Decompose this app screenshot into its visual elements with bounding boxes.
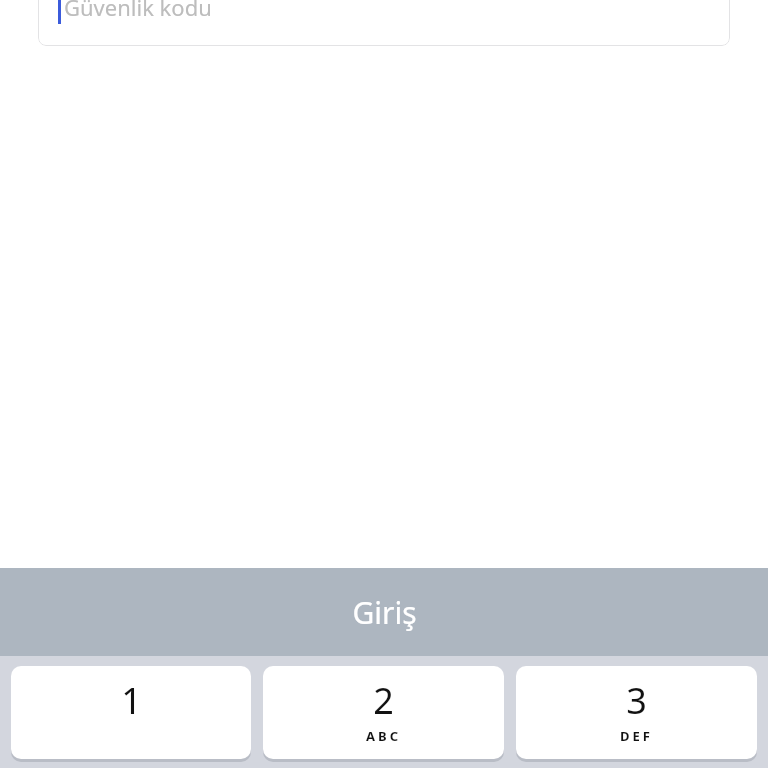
button[interactable]: Key 2 xyxy=(263,666,504,762)
staticText: DEF xyxy=(620,727,653,745)
staticText: 1 xyxy=(121,676,142,725)
staticText: 2 xyxy=(373,676,394,725)
button[interactable]: Key 3 xyxy=(516,666,757,762)
button[interactable]: Key 1 xyxy=(11,666,251,762)
button[interactable]: Güvenlik kodu xyxy=(38,0,730,46)
staticText: 3 xyxy=(626,676,647,725)
staticText: Güvenlik kodu xyxy=(64,0,212,22)
button[interactable]: Giriş xyxy=(0,568,768,656)
staticText: ABC xyxy=(366,727,401,745)
staticText: Giriş xyxy=(352,592,417,633)
